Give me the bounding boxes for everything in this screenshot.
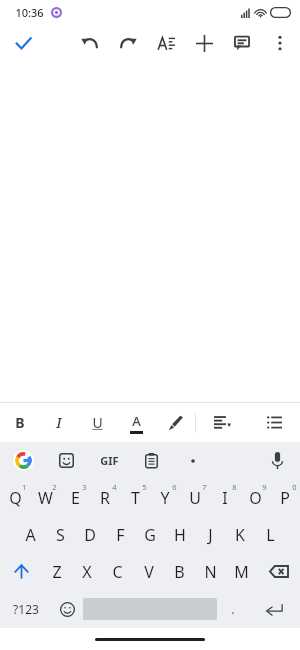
staticText: Q [9,487,22,509]
button[interactable]: Google Search [2,442,45,479]
button[interactable]: G [135,516,165,553]
staticText: S [56,524,65,546]
button[interactable]: Backspace [257,553,300,590]
button[interactable]: Emoji [51,590,83,628]
button[interactable]: J [195,516,225,553]
staticText: D [84,524,96,546]
button[interactable]: Text formatting [147,25,185,61]
staticText: 8 [232,482,237,492]
staticText: . [231,600,235,618]
button[interactable]: Settings [172,442,214,479]
staticText: 6 [172,482,177,492]
staticText: GIF [100,453,119,468]
button[interactable]: Insert [185,25,223,61]
staticText: P [280,487,290,509]
staticText: 0 [292,482,297,492]
staticText: J [208,524,213,546]
staticText: N [204,561,217,583]
staticText: E [71,487,80,509]
staticText: A [132,412,141,430]
button[interactable]: B [164,553,195,590]
staticText: V [144,561,154,583]
staticText: 2 [52,482,57,492]
staticText: 3 [82,482,87,492]
button[interactable]: Redo [109,25,147,61]
staticText: 9 [262,482,267,492]
button[interactable]: T [120,479,150,516]
button[interactable]: Underline [78,403,117,442]
staticText: O [249,487,262,509]
button[interactable]: H [165,516,195,553]
button[interactable]: Y [150,479,180,516]
button[interactable]: Comment [223,25,261,61]
button[interactable]: E [60,479,90,516]
button[interactable]: GIF [88,442,130,479]
button[interactable]: Stickers [45,442,88,479]
staticText: U [92,413,103,432]
staticText: U [189,487,201,509]
staticText: W [38,487,53,509]
button[interactable]: C [102,553,133,590]
staticText: B [174,561,185,583]
staticText: L [266,524,275,546]
staticText: T [131,487,140,509]
staticText: B [15,413,25,432]
button[interactable]: Alignment [196,403,248,442]
staticText: X [82,561,92,583]
staticText: Z [52,561,62,583]
button[interactable]: P [270,479,300,516]
staticText: ?123 [13,601,39,617]
button[interactable]: Clipboard [130,442,172,479]
staticText: C [112,561,123,583]
button[interactable]: O [240,479,270,516]
button[interactable]: Italic [39,403,78,442]
button[interactable]: Bulleted list [248,403,300,442]
button[interactable]: S [45,516,75,553]
staticText: F [116,524,125,546]
button[interactable]: K [225,516,255,553]
staticText: 4 [112,482,117,492]
button[interactable]: X [72,553,102,590]
button[interactable]: U [180,479,210,516]
staticText: 1 [22,482,27,492]
staticText: 5 [142,482,147,492]
button[interactable]: Z [42,553,72,590]
button[interactable]: R [90,479,120,516]
button[interactable]: I [210,479,240,516]
staticText: A [25,524,36,546]
staticText: I [222,487,228,509]
button[interactable]: Voice input [256,442,298,479]
staticText: 10:36 [15,5,44,20]
staticText: Y [160,487,170,509]
button[interactable]: Done [6,26,40,60]
staticText: M [234,561,249,583]
button[interactable]: . [217,590,249,628]
button[interactable]: Undo [71,25,109,61]
staticText: 7 [202,482,207,492]
button[interactable]: Q [0,479,30,516]
button[interactable]: ?123 [0,590,51,628]
staticText: G [144,524,156,546]
button[interactable]: Shift [0,553,42,590]
button[interactable]: A [15,516,45,553]
button[interactable]: N [195,553,226,590]
button[interactable]: V [133,553,164,590]
button[interactable]: W [30,479,60,516]
staticText: R [100,487,110,509]
button[interactable]: F [105,516,135,553]
staticText: K [235,524,245,546]
button[interactable]: M [226,553,257,590]
staticText: H [174,524,186,546]
button[interactable]: L [255,516,285,553]
button[interactable]: Highlight [156,403,195,442]
button[interactable]: D [75,516,105,553]
button[interactable]: Enter [249,590,300,628]
staticText: I [56,413,62,432]
button[interactable]: Text color [117,403,156,442]
button[interactable]: More options [261,25,299,61]
button[interactable]: Bold [0,403,39,442]
